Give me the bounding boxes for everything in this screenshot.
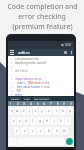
staticText: error checking (18, 12, 66, 22)
staticText: y (41, 109, 43, 113)
staticText: magnitdeup interpr (15, 77, 42, 81)
staticText: n (56, 129, 58, 133)
staticText: m (63, 129, 66, 133)
staticText: v (40, 129, 42, 133)
staticText: 3 (11, 66, 13, 69)
staticText: 9 (63, 102, 65, 106)
staticText: 1 (10, 102, 12, 106)
staticText: ▾▮ 14:32 (61, 43, 72, 47)
staticText: o (62, 109, 64, 113)
staticText: 5 (11, 74, 13, 77)
staticText: 10 (10, 93, 13, 96)
staticText: u (48, 109, 50, 113)
staticText: t (35, 109, 37, 113)
staticText: 5 (37, 102, 39, 106)
staticText: walk.nc (18, 50, 30, 55)
staticText: 3 (23, 102, 25, 106)
staticText: a (13, 119, 15, 123)
staticText: TABS (24, 97, 30, 100)
staticText: gen calculate (34, 97, 49, 100)
staticText: m1 s1e-2 (15, 69, 28, 73)
staticText: 2 (11, 62, 13, 65)
staticText: k (60, 119, 62, 123)
staticText: )= end (41, 85, 50, 89)
staticText: 8 (11, 86, 13, 89)
staticText: "Welcome to the (27, 81, 50, 85)
staticText: r (29, 109, 31, 113)
staticText: 8 (57, 102, 59, 106)
staticText: 7 (50, 102, 52, 106)
staticText: convert (11, 97, 20, 100)
staticText: (premium feature) (12, 22, 73, 32)
staticText: j (54, 119, 55, 123)
staticText: 6 (11, 78, 13, 81)
staticText: clast = (17, 81, 27, 85)
staticText: e (23, 109, 25, 113)
staticText: s (19, 119, 21, 123)
staticText: b (48, 129, 50, 133)
staticText: z (16, 129, 18, 133)
staticText: w (16, 109, 19, 113)
staticText: #starting order control (15, 61, 47, 65)
staticText: write (15, 93, 22, 96)
staticText: 0 (70, 102, 72, 106)
staticText: 1 (11, 58, 13, 61)
staticText: 4 (30, 102, 32, 106)
other: Send (66, 138, 73, 145)
staticText: g (39, 119, 41, 123)
staticText: h (46, 119, 48, 123)
staticText: x (24, 129, 26, 133)
staticText: 9 (11, 90, 13, 93)
staticText: f (32, 119, 34, 123)
staticText: 7 (11, 82, 13, 85)
staticText: Code completion and (7, 2, 78, 12)
staticText: 6 (43, 102, 45, 106)
staticText: q (11, 109, 13, 113)
staticText: entry/retrace info (15, 57, 39, 61)
staticText: i (56, 109, 57, 113)
staticText: #on value button (17, 85, 41, 89)
staticText: l (68, 119, 69, 123)
staticText: 4 (11, 70, 13, 73)
staticText: M1 (17, 89, 22, 93)
staticText: d (25, 119, 27, 123)
staticText: 2 (17, 102, 19, 106)
staticText: p (69, 109, 71, 113)
staticText: c (32, 129, 34, 133)
